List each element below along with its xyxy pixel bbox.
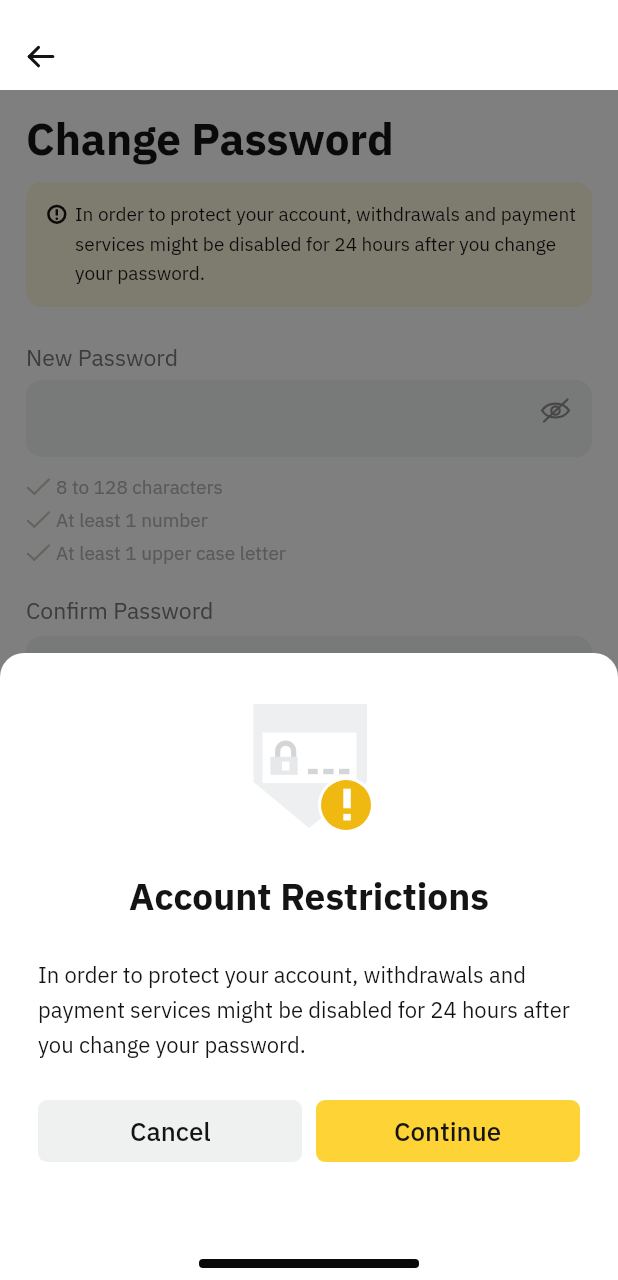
staticText: 8 to 128 characters [56,475,223,500]
staticText: At least 1 upper case letter [56,541,286,566]
button[interactable]: Cancel [38,1100,302,1162]
staticText: In order to protect your account, withdr… [75,202,580,285]
staticText: At least 1 number [56,508,208,533]
staticText: Continue [394,1114,502,1148]
staticText: Account Restrictions [0,872,618,920]
staticText: In order to protect your account, withdr… [38,960,580,1059]
staticText: Change Password [26,110,394,167]
staticText: Confirm Password [26,595,214,625]
staticText: New Password [26,342,178,372]
button[interactable]: Back [12,28,70,86]
staticText: Cancel [130,1114,211,1148]
button[interactable]: Continue [316,1100,580,1162]
